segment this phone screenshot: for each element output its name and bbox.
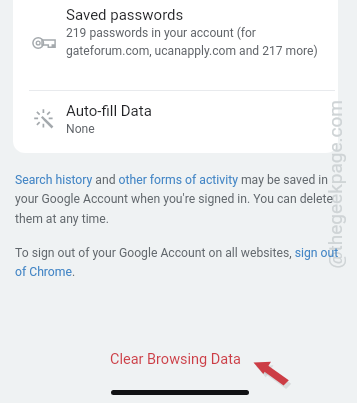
button[interactable]: Auto-fill data (13, 91, 338, 147)
staticText: @thegeekpage.com (323, 99, 345, 268)
staticText: None (66, 122, 95, 136)
staticText: 219 passwords in your account (for gatef… (66, 26, 326, 58)
staticText: Clear Browsing Data (110, 351, 241, 368)
other: Saved passwords (32, 31, 56, 55)
button[interactable]: Clear Browsing Data (101, 345, 250, 374)
staticText: Saved passwords (66, 6, 184, 24)
button[interactable]: Saved passwords (13, 0, 338, 86)
staticText: Auto-fill Data (66, 102, 152, 120)
staticText: To sign out of your Google Account on al… (15, 246, 349, 279)
staticText: Search history and other forms of activi… (15, 173, 349, 226)
other: Auto-fill data (32, 107, 56, 131)
